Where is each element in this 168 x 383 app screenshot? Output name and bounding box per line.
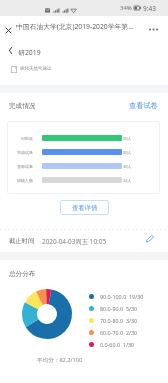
button[interactable]: 查看试卷 — [127, 99, 160, 112]
staticText: 30人 — [123, 164, 132, 169]
staticText: 60.0-70.0 2/30 — [100, 329, 138, 336]
button[interactable]: Edit deadline — [144, 232, 156, 244]
staticText: 截止时间 — [9, 237, 35, 245]
staticText: 30人 — [123, 136, 132, 141]
button[interactable]: Back — [4, 44, 17, 57]
button[interactable]: More options — [145, 21, 161, 37]
staticText: 班级人数 — [17, 178, 33, 183]
staticText: 研2019 — [18, 48, 41, 57]
staticText: 9:43 — [143, 4, 156, 13]
staticText: 查看试卷 — [129, 101, 158, 110]
staticText: 查看详情 — [72, 204, 98, 212]
staticText: 70.0-80.0 3/30 — [100, 317, 138, 324]
staticText: 已批改 — [21, 136, 33, 141]
staticText: 总分分布 — [9, 270, 36, 278]
staticText: 34% — [120, 4, 132, 12]
button[interactable]: 查看详情 — [60, 200, 109, 215]
staticText: 完成试卷 — [17, 150, 33, 155]
staticText: 完成情况 — [9, 102, 36, 110]
staticText: 平均分：82.2/100 — [37, 356, 83, 364]
staticText: 液化天然气储运 — [20, 66, 52, 72]
staticText: 查看试卷 — [17, 164, 33, 169]
staticText: 32人 — [123, 178, 132, 183]
staticText: 0.0-60.0 1/30 — [100, 341, 135, 348]
staticText: 中国石油大学(北京)2019-2020学年第… — [16, 22, 134, 31]
staticText: 30人 — [123, 150, 132, 155]
staticText: 80.0-90.0 5/30 — [100, 305, 138, 312]
staticText: 2020-04-03周五 10:05 — [42, 237, 107, 246]
staticText: 90.0-100.0 19/30 — [100, 293, 144, 300]
button[interactable]: Close — [2, 24, 14, 36]
